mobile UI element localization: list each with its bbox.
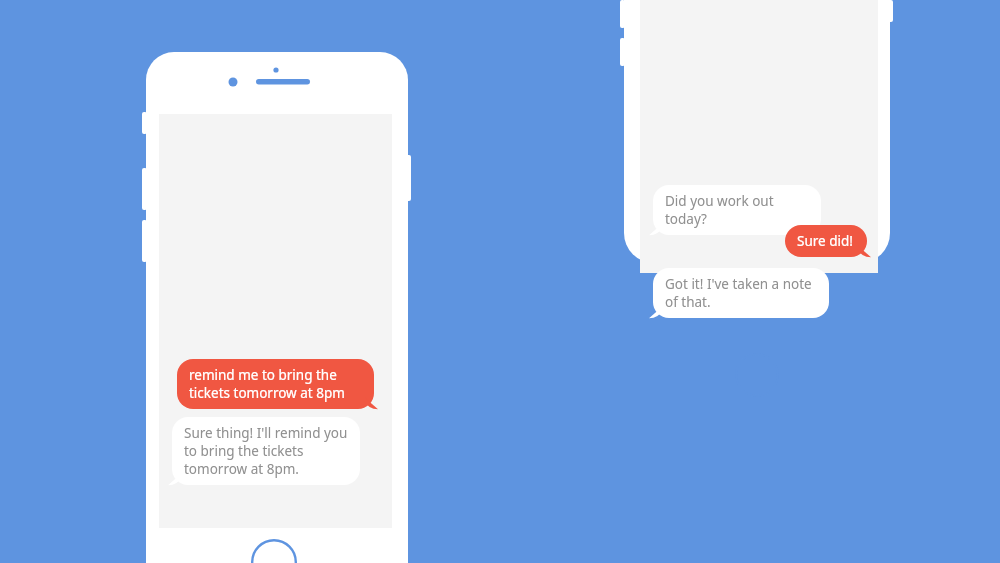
button[interactable]: Sure thing! I'll remind you to bring the… xyxy=(172,417,360,485)
staticText: remind me to bring the tickets tomorrow … xyxy=(189,366,362,402)
button[interactable] xyxy=(624,0,890,263)
staticText: Sure did! xyxy=(797,232,853,250)
button[interactable]: remind me to bring the tickets tomorrow … xyxy=(177,359,374,409)
button[interactable]: Home xyxy=(251,539,297,563)
staticText: Got it! I've taken a note of that. xyxy=(665,275,817,311)
staticText: Did you work out today? xyxy=(665,192,809,228)
button[interactable]: Sure did! xyxy=(785,225,867,257)
button[interactable]: Got it! I've taken a note of that. xyxy=(653,268,829,318)
button[interactable] xyxy=(146,52,408,563)
button[interactable]: Did you work out today? xyxy=(653,185,821,235)
staticText: Sure thing! I'll remind you to bring the… xyxy=(184,424,348,478)
